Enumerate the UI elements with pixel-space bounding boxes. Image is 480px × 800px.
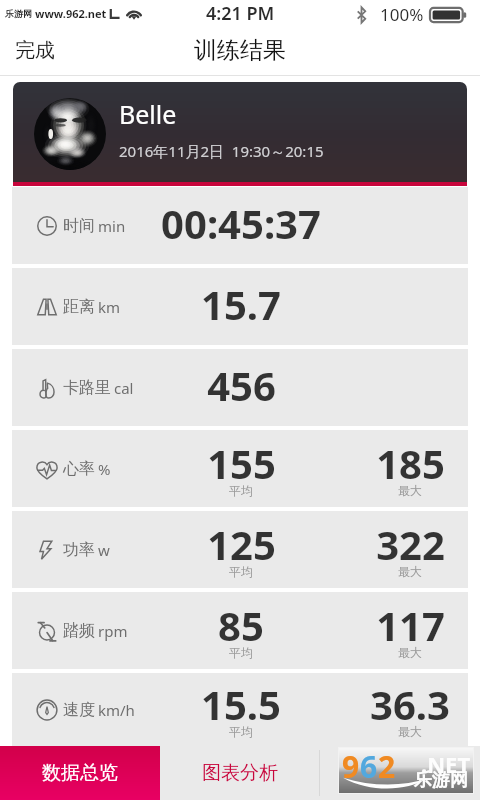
button[interactable]: 踏频 <box>12 592 468 669</box>
staticText: .NET <box>421 749 471 779</box>
button[interactable]: 历史记录 <box>320 746 480 800</box>
staticText: w <box>98 540 110 560</box>
staticText: km/h <box>98 700 135 720</box>
staticText: 322 <box>376 517 445 571</box>
staticText: 85 <box>218 598 264 652</box>
staticText: 最大 <box>398 724 422 739</box>
staticText: 最大 <box>398 483 422 498</box>
staticText: 数据总览 <box>42 761 118 785</box>
staticText: 完成 <box>15 38 55 63</box>
staticText: 6 <box>360 746 378 787</box>
button[interactable]: 速度 <box>12 673 468 746</box>
staticText: rpm <box>98 621 128 641</box>
staticText: 平均 <box>229 483 253 498</box>
button[interactable]: 功率 <box>12 511 468 588</box>
staticText: 卡路里 <box>63 378 111 398</box>
staticText: 历史记录 <box>362 761 438 785</box>
staticText: 最大 <box>398 564 422 579</box>
staticText: 时间 <box>63 216 95 236</box>
staticText: 心率 <box>63 459 95 479</box>
staticText: 117 <box>376 598 445 652</box>
staticText: 2 <box>378 746 396 787</box>
staticText: 155 <box>207 436 276 490</box>
staticText: cal <box>114 378 134 398</box>
staticText: 36.3 <box>370 677 450 731</box>
staticText: 速度 <box>63 700 95 720</box>
staticText: km <box>98 297 121 317</box>
staticText: 训练结果 <box>194 36 286 65</box>
staticText: 100% <box>380 3 424 26</box>
staticText: 最大 <box>398 645 422 660</box>
staticText: 9 <box>342 746 360 787</box>
button[interactable]: 距离 <box>12 268 468 345</box>
staticText: www.962.net <box>35 6 107 21</box>
staticText: 15.7 <box>201 277 281 331</box>
staticText: 乐游网 <box>5 8 32 19</box>
staticText: 图表分析 <box>202 761 278 785</box>
staticText: 平均 <box>229 564 253 579</box>
button[interactable]: Belle <box>13 82 467 186</box>
staticText: min <box>98 216 126 236</box>
staticText: 00:45:37 <box>161 196 321 250</box>
button[interactable]: 心率 <box>12 430 468 507</box>
staticText: 4:21 PM <box>206 1 275 26</box>
staticText: 2016年11月2日 19:30～20:15 <box>119 141 324 161</box>
button[interactable]: 卡路里 <box>12 349 468 426</box>
button[interactable]: 时间 <box>12 187 468 264</box>
staticText: Belle <box>119 97 177 131</box>
staticText: 185 <box>376 436 445 490</box>
button[interactable]: 图表分析 <box>160 746 320 800</box>
staticText: 15.5 <box>201 677 281 731</box>
staticText: 平均 <box>229 645 253 660</box>
staticText: 125 <box>207 517 276 571</box>
button[interactable]: 数据总览 <box>0 746 160 800</box>
staticText: 距离 <box>63 297 95 317</box>
staticText: 456 <box>207 358 276 412</box>
button[interactable]: 完成 <box>0 28 70 73</box>
staticText: % <box>98 459 111 479</box>
staticText: 乐游网 <box>414 769 468 792</box>
staticText: 功率 <box>63 540 95 560</box>
staticText: 平均 <box>229 724 253 739</box>
staticText: 踏频 <box>63 621 95 641</box>
